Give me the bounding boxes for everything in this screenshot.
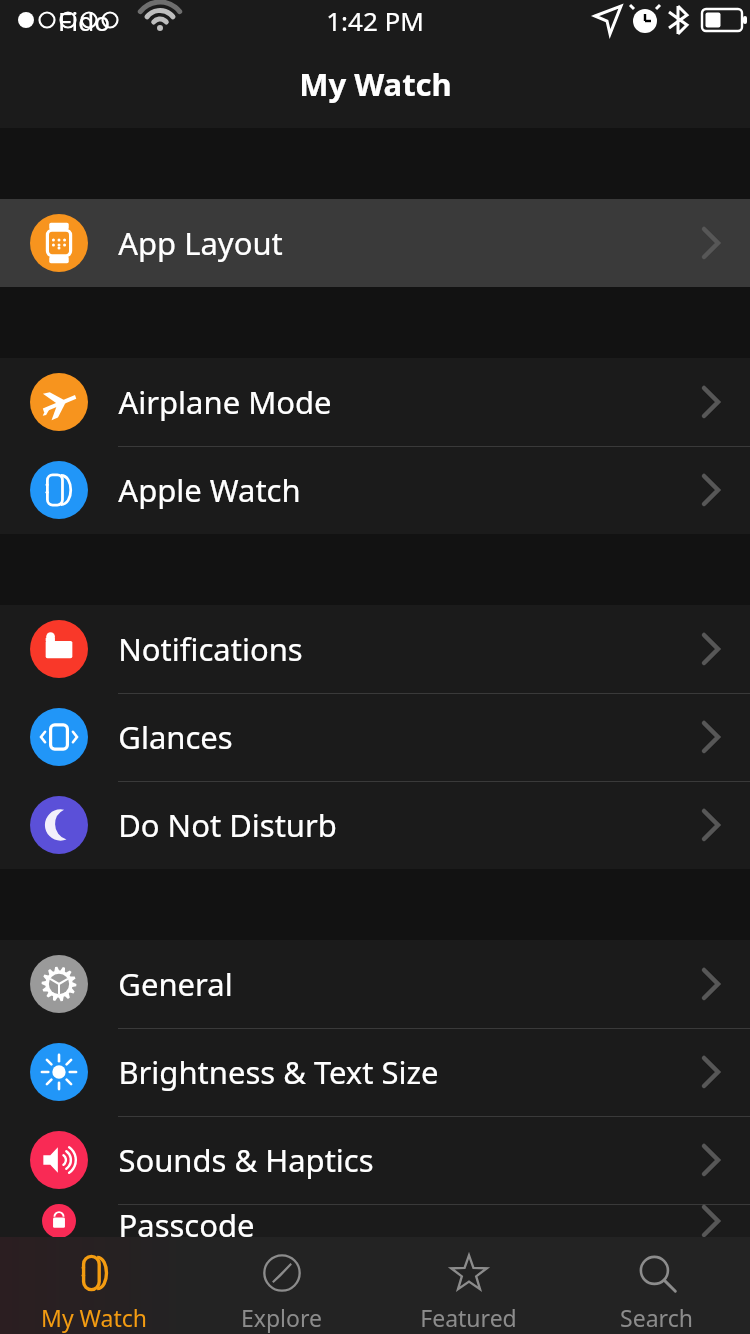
button[interactable]: Passcode <box>0 1204 750 1238</box>
staticText: Airplane Mode <box>118 381 332 423</box>
button[interactable]: Featured <box>375 1237 562 1334</box>
staticText: Featured <box>420 1302 517 1333</box>
staticText: Apple Watch <box>118 469 301 511</box>
button[interactable]: Apple Watch <box>0 446 750 534</box>
button[interactable]: My Watch <box>0 1237 187 1334</box>
staticText: Brightness & Text Size <box>118 1051 439 1093</box>
button[interactable]: Explore <box>188 1237 375 1334</box>
button[interactable]: Brightness & Text Size <box>0 1028 750 1116</box>
button[interactable]: General <box>0 940 750 1028</box>
staticText: Fido <box>58 3 110 38</box>
staticText: Notifications <box>118 628 303 670</box>
button[interactable]: Airplane Mode <box>0 358 750 446</box>
button[interactable]: Notifications <box>0 605 750 693</box>
staticText: Search <box>620 1302 693 1333</box>
button[interactable]: Do Not Disturb <box>0 781 750 869</box>
staticText: App Layout <box>118 222 283 264</box>
staticText: Sounds & Haptics <box>118 1139 374 1181</box>
staticText: Passcode <box>118 1204 255 1238</box>
staticText: Do Not Disturb <box>118 804 337 846</box>
staticText: My Watch <box>299 63 452 105</box>
button[interactable]: App Layout <box>0 199 750 287</box>
staticText: My Watch <box>41 1302 147 1333</box>
button[interactable]: Glances <box>0 693 750 781</box>
staticText: 1:42 PM <box>326 3 424 38</box>
staticText: General <box>118 963 233 1005</box>
button[interactable]: Sounds & Haptics <box>0 1116 750 1204</box>
button[interactable]: Search <box>563 1237 750 1334</box>
staticText: Explore <box>241 1302 322 1333</box>
staticText: Glances <box>118 716 233 758</box>
